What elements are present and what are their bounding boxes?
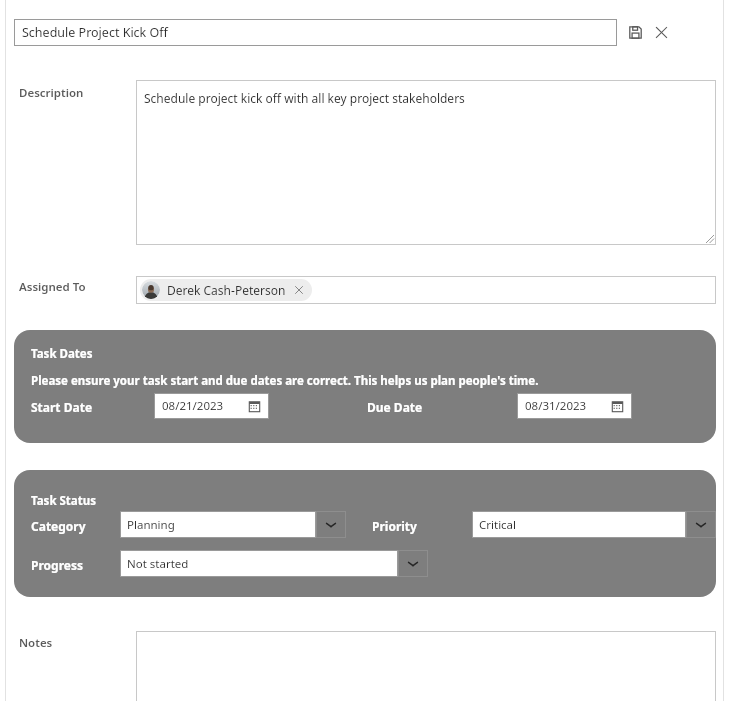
staticText: Notes xyxy=(19,635,53,651)
staticText: Description xyxy=(19,85,84,101)
staticText: 08/31/2023 xyxy=(525,398,587,414)
staticText: Not started xyxy=(127,556,189,572)
staticText: Task Dates xyxy=(31,346,93,362)
staticText: Category xyxy=(31,518,86,534)
staticText: Assigned To xyxy=(19,279,86,295)
staticText: Critical xyxy=(479,517,517,533)
button[interactable]: Save xyxy=(622,19,648,45)
staticText: Progress xyxy=(31,557,83,573)
button[interactable]: Schedule Project Kick Off xyxy=(14,19,617,46)
button[interactable]: Close xyxy=(648,19,674,45)
staticText: Priority xyxy=(372,518,417,534)
button[interactable]: Category: Planning xyxy=(120,511,346,538)
button[interactable]: Priority: Critical xyxy=(472,511,716,538)
button[interactable]: Remove Derek Cash-Peterson xyxy=(294,285,304,295)
staticText: 08/21/2023 xyxy=(162,398,224,414)
button[interactable]: Schedule project kick off with all key p… xyxy=(136,80,716,245)
button[interactable]: Due date 08/31/2023 xyxy=(517,393,632,419)
button[interactable] xyxy=(136,631,716,701)
staticText: Planning xyxy=(127,517,175,533)
button[interactable]: Start date 08/21/2023 xyxy=(154,393,269,419)
staticText: Please ensure your task start and due da… xyxy=(31,373,539,389)
button[interactable]: Progress: Not started xyxy=(120,550,428,577)
button[interactable]: Derek Cash-Peterson xyxy=(140,279,312,301)
staticText: Schedule project kick off with all key p… xyxy=(144,90,465,106)
button[interactable]: Derek Cash-Peterson xyxy=(136,276,716,304)
staticText: Schedule Project Kick Off xyxy=(22,24,168,41)
staticText: Start Date xyxy=(31,399,93,415)
staticText: Task Status xyxy=(31,493,96,509)
staticText: Derek Cash-Peterson xyxy=(167,282,286,298)
staticText: Due Date xyxy=(367,399,423,415)
